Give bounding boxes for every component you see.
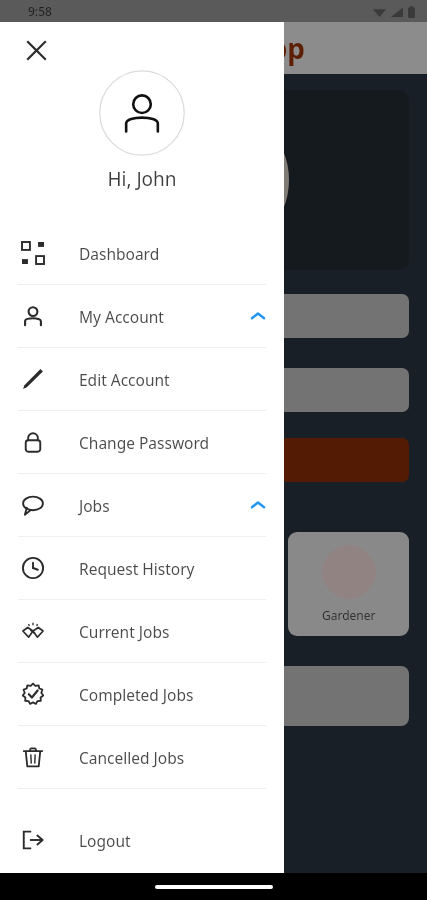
staticText: Cancelled Jobs	[79, 747, 185, 768]
staticText: Hi, John	[0, 166, 284, 192]
button[interactable]: My Account	[0, 285, 284, 347]
button[interactable]: Request History	[0, 537, 284, 599]
staticText: Edit Account	[79, 369, 170, 390]
button[interactable]: Edit Account	[0, 348, 284, 410]
staticText: My Account	[79, 306, 164, 327]
staticText: Dashboard	[79, 243, 160, 264]
staticText: Logout	[79, 830, 131, 851]
staticText: Request History	[79, 558, 195, 579]
button[interactable]: Close	[18, 32, 54, 68]
button[interactable]: Jobs	[0, 474, 284, 536]
button[interactable]: Cancelled Jobs	[0, 726, 284, 788]
staticText: Gardener	[322, 607, 376, 623]
button[interactable]: Change Password	[0, 411, 284, 473]
button[interactable]: Logout	[0, 809, 284, 871]
staticText: NOW	[170, 157, 258, 203]
staticText: Jobs	[79, 495, 110, 516]
button[interactable]: Completed Jobs	[0, 663, 284, 725]
staticText: Completed Jobs	[79, 684, 194, 705]
button[interactable]: Dashboard	[0, 222, 284, 284]
button[interactable]: Current Jobs	[0, 600, 284, 662]
staticText: Change Password	[79, 432, 210, 453]
staticText: shoplocalapp	[120, 29, 306, 67]
staticText: 9:58	[28, 3, 52, 19]
staticText: Current Jobs	[79, 621, 170, 642]
